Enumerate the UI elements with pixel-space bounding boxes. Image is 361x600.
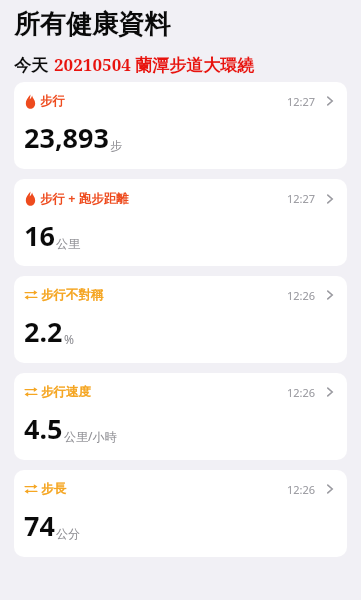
button[interactable]: 步行不對稱 (14, 276, 347, 363)
staticText: 步 (110, 138, 122, 153)
button[interactable]: Show details (323, 385, 337, 399)
staticText: % (64, 331, 74, 347)
button[interactable]: Show details (323, 482, 337, 496)
staticText: 步長 (41, 481, 66, 497)
staticText: 今天 (14, 55, 48, 76)
staticText: 所有健康資料 (14, 8, 170, 41)
staticText: 20210504 蘭潭步道大環繞 (54, 53, 255, 76)
button[interactable]: Show details (323, 288, 337, 302)
staticText: 12:26 (287, 482, 316, 497)
staticText: 2.2 (24, 313, 63, 350)
staticText: 23,893 (24, 119, 109, 156)
staticText: 12:26 (287, 288, 316, 303)
button[interactable]: 步行 (14, 82, 347, 169)
staticText: 12:27 (287, 191, 316, 206)
button[interactable]: Show details (323, 94, 337, 108)
staticText: 4.5 (24, 410, 63, 447)
staticText: 16 (24, 217, 55, 254)
button[interactable]: 步行速度 (14, 373, 347, 460)
staticText: 74 (24, 507, 55, 544)
button[interactable]: Show details (323, 192, 337, 206)
staticText: 步行速度 (41, 384, 91, 400)
staticText: 12:27 (287, 94, 316, 109)
staticText: 12:26 (287, 385, 316, 400)
staticText: 公里/小時 (64, 428, 117, 444)
staticText: 步行不對稱 (41, 287, 104, 303)
button[interactable]: 步行 + 跑步距離 (14, 179, 347, 266)
button[interactable]: 步長 (14, 470, 347, 557)
staticText: 步行 (40, 93, 65, 109)
staticText: 公分 (56, 526, 80, 541)
staticText: 公里 (56, 236, 80, 251)
staticText: 步行 + 跑步距離 (40, 190, 129, 207)
